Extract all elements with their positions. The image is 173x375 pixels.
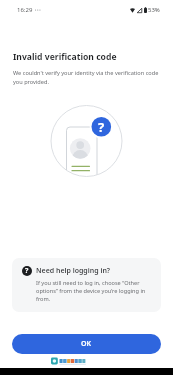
staticText: We couldn't verify your identity via the… <box>13 69 160 85</box>
button[interactable]: ? <box>12 258 161 312</box>
staticText: ? <box>98 118 105 136</box>
staticText: Invalid verification code <box>13 51 117 63</box>
staticText: Need help logging in? <box>36 266 111 276</box>
button[interactable]: OK <box>12 334 161 354</box>
staticText: If you still need to log in, choose “Oth… <box>36 279 150 303</box>
staticText: 16:29 <box>17 6 33 14</box>
staticText: OK <box>81 339 92 349</box>
staticText: 53% <box>148 6 160 14</box>
staticText: ? <box>25 266 29 276</box>
